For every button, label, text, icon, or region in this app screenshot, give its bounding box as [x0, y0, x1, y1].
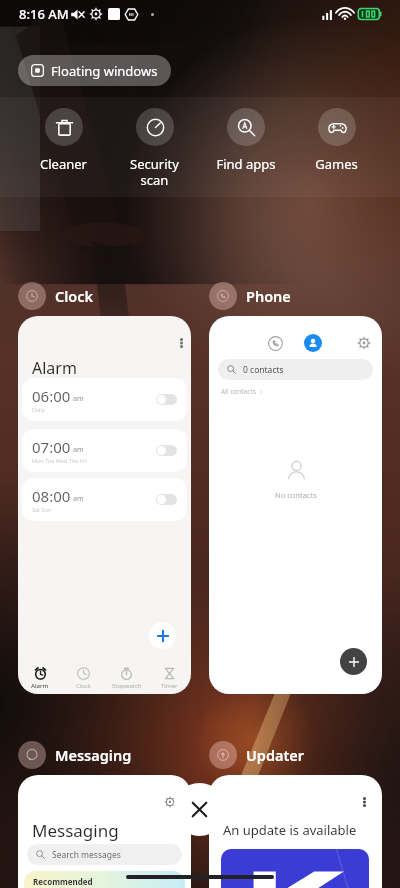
button[interactable]: Cleaner: [18, 108, 109, 173]
staticText: Sat Sun: [32, 506, 52, 513]
staticText: Updater: [246, 745, 305, 765]
staticText: Messaging: [32, 819, 119, 842]
button[interactable]: Stopwatch: [105, 667, 148, 690]
staticText: Security scan: [130, 155, 179, 188]
staticText: Mon Tue Wed Thu Fri: [32, 457, 87, 464]
staticText: 08:00: [32, 486, 71, 506]
staticText: 07:00: [32, 437, 71, 457]
button[interactable]: Updater: [209, 740, 305, 770]
button[interactable]: Contacts: [304, 334, 322, 352]
staticText: am: [73, 394, 84, 404]
staticText: Daily: [32, 406, 45, 413]
button[interactable]: Toggle alarm 07:00: [156, 445, 177, 456]
button[interactable]: Security scan: [109, 108, 200, 188]
button[interactable]: Settings: [18, 775, 191, 888]
button[interactable]: More options: [209, 775, 382, 888]
button[interactable]: Alarm: [18, 667, 62, 690]
staticText: Stopwatch: [112, 682, 142, 690]
button[interactable]: Phone: [209, 281, 291, 311]
staticText: Timer: [161, 682, 178, 690]
staticText: Recommended: [33, 876, 93, 887]
button[interactable]: Add contact: [340, 648, 367, 675]
staticText: 06:00: [32, 386, 71, 406]
staticText: Cleaner: [40, 155, 87, 173]
staticText: Alarm: [32, 357, 77, 379]
staticText: Alarm: [31, 682, 49, 690]
button[interactable]: Dialpad: [266, 334, 284, 352]
button[interactable]: Settings: [162, 794, 178, 810]
staticText: Messaging: [55, 745, 132, 765]
button[interactable]: Add alarm: [149, 622, 176, 649]
button[interactable]: Floating windows: [18, 55, 171, 86]
staticText: An update is available: [223, 821, 357, 839]
button[interactable]: Games: [291, 108, 382, 173]
staticText: Clock: [76, 682, 92, 690]
button[interactable]: 07:00: [22, 429, 187, 472]
staticText: Clock: [55, 286, 94, 306]
button[interactable]: Timer: [148, 667, 191, 690]
staticText: 8:16 AM: [19, 5, 69, 23]
button[interactable]: Messaging: [18, 740, 132, 770]
staticText: No contacts: [275, 490, 317, 500]
staticText: am: [73, 445, 84, 455]
staticText: Phone: [246, 286, 291, 306]
button[interactable]: Close: [173, 783, 226, 836]
button[interactable]: 06:00: [22, 378, 187, 421]
staticText: Games: [315, 155, 358, 173]
button[interactable]: Toggle alarm 08:00: [156, 494, 177, 505]
staticText: 0 contacts: [243, 364, 284, 376]
staticText: Find apps: [216, 155, 276, 173]
button[interactable]: More options: [356, 794, 372, 810]
button[interactable]: All contacts: [221, 387, 263, 396]
button[interactable]: More options: [173, 335, 189, 351]
button[interactable]: 0 contacts: [218, 359, 373, 380]
staticText: Floating windows: [51, 62, 158, 80]
staticText: All contacts: [221, 387, 256, 396]
button[interactable]: Settings: [355, 334, 373, 352]
button[interactable]: Dialpad: [209, 316, 382, 694]
button[interactable]: More options: [18, 316, 191, 694]
staticText: Search messages: [52, 849, 121, 861]
button[interactable]: Search messages: [27, 844, 182, 865]
button[interactable]: Clock: [18, 281, 94, 311]
button[interactable]: Find apps: [200, 108, 291, 173]
button[interactable]: Clock: [62, 667, 105, 690]
button[interactable]: Toggle alarm 06:00: [156, 394, 177, 405]
button[interactable]: 08:00: [22, 478, 187, 521]
staticText: am: [73, 494, 84, 504]
